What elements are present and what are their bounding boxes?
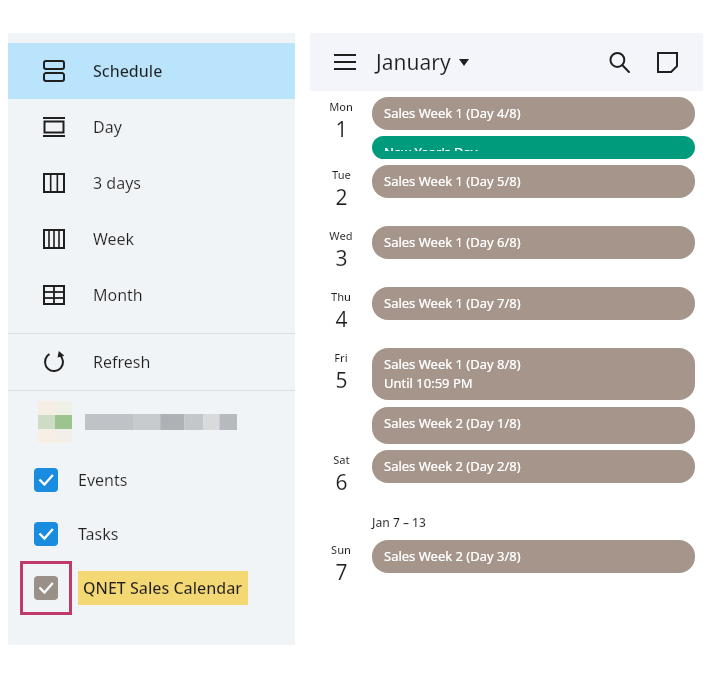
staticText: Events — [78, 469, 128, 491]
button[interactable]: Sales Week 2 (Day 1/8) — [372, 407, 695, 444]
staticText: Jan 7 – 13 — [372, 514, 426, 530]
staticText: Wed — [329, 228, 353, 243]
staticText: 6 — [335, 468, 348, 497]
button[interactable]: QNET Sales Calendar — [8, 561, 295, 615]
button[interactable]: Sales Week 1 (Day 8/8) — [372, 348, 695, 400]
staticText: Sales Week 2 (Day 1/8) — [384, 414, 521, 432]
staticText: 5 — [335, 366, 348, 395]
button[interactable]: Tasks — [8, 507, 295, 561]
staticText: 3 — [335, 244, 348, 273]
staticText: 3 days — [93, 172, 141, 194]
staticText: Schedule — [93, 60, 163, 82]
staticText: Sales Week 1 (Day 5/8) — [384, 172, 521, 190]
staticText: Week — [93, 228, 135, 250]
button[interactable]: Sales Week 2 (Day 2/8) — [372, 450, 695, 483]
button[interactable]: 3 days — [8, 155, 295, 211]
staticText: Fri — [334, 350, 348, 365]
button[interactable]: Today — [647, 42, 687, 82]
button[interactable]: Sales Week 1 (Day 6/8) — [372, 226, 695, 259]
staticText: Mon — [329, 99, 353, 114]
staticText: Month — [93, 284, 143, 306]
button[interactable]: Day — [8, 99, 295, 155]
staticText: 7 — [335, 558, 348, 587]
button[interactable]: Events — [8, 453, 295, 507]
staticText: Refresh — [93, 351, 151, 373]
staticText: Sales Week 2 (Day 2/8) — [384, 457, 521, 475]
staticText: 2 — [335, 183, 348, 212]
button[interactable]: Sales Week 2 (Day 3/8) — [372, 540, 695, 573]
staticText: QNET Sales Calendar — [83, 577, 243, 599]
staticText: Thu — [331, 289, 351, 304]
staticText: Sales Week 1 (Day 4/8) — [384, 104, 521, 122]
button[interactable]: Search — [599, 42, 639, 82]
staticText: January — [376, 48, 451, 77]
staticText: Sales Week 2 (Day 3/8) — [384, 547, 521, 565]
button[interactable]: New Year's Day — [372, 136, 695, 159]
button[interactable]: Week — [8, 211, 295, 267]
button[interactable]: Sales Week 1 (Day 7/8) — [372, 287, 695, 320]
staticText: Sun — [331, 542, 351, 557]
staticText: Sales Week 1 (Day 6/8) — [384, 233, 521, 251]
button[interactable]: Open navigation drawer — [328, 45, 362, 79]
button[interactable]: Sales Week 1 (Day 5/8) — [372, 165, 695, 198]
staticText: Sat — [333, 452, 350, 467]
staticText: Day — [93, 116, 122, 138]
button[interactable] — [8, 391, 295, 453]
staticText: Tue — [332, 167, 351, 182]
button[interactable]: January — [376, 48, 469, 77]
staticText: Sales Week 1 (Day 7/8) — [384, 294, 521, 312]
button[interactable]: Month — [8, 267, 295, 323]
staticText: 4 — [335, 305, 348, 334]
staticText: Tasks — [78, 523, 119, 545]
staticText: Sales Week 1 (Day 8/8) — [384, 355, 521, 373]
button[interactable]: Refresh — [8, 334, 295, 390]
staticText: New Year's Day — [384, 143, 478, 151]
staticText: Until 10:59 PM — [384, 374, 473, 392]
button[interactable]: Schedule — [8, 43, 295, 99]
button[interactable]: Sales Week 1 (Day 4/8) — [372, 97, 695, 130]
staticText: 1 — [335, 115, 348, 144]
